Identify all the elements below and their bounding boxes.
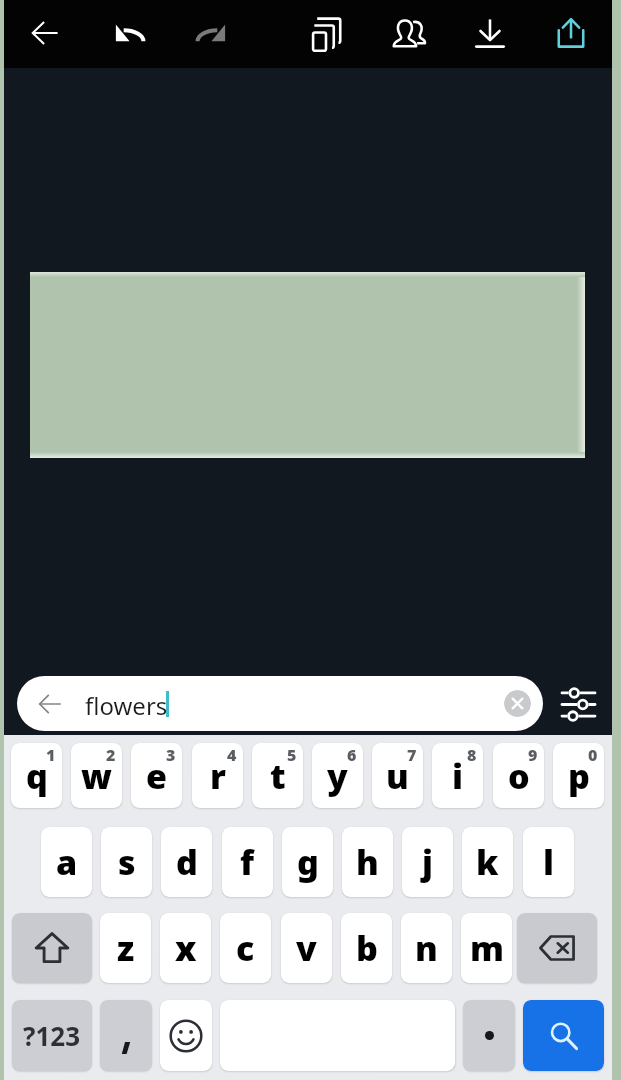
staticText: d [176,839,198,885]
button[interactable]: m [461,913,512,983]
staticText: u [386,753,409,799]
button[interactable]: q [11,743,62,808]
staticText: o [508,753,530,799]
button[interactable]: v [281,913,332,983]
staticText: k [476,839,499,885]
staticText: a [56,839,78,885]
button[interactable]: l [523,827,574,897]
button[interactable]: Search filters [552,678,604,730]
button[interactable]: Search [523,1000,604,1071]
button[interactable]: f [222,827,273,897]
button[interactable]: ?123 [12,1000,92,1071]
button[interactable]: Download [464,7,516,59]
staticText: 1 [46,744,56,766]
button[interactable]: g [282,827,333,897]
button[interactable]: Period [463,1000,515,1071]
button[interactable]: Backspace [517,913,597,983]
staticText: b [356,925,378,971]
button[interactable]: b [341,913,392,983]
staticText: g [297,839,319,885]
button[interactable]: a [41,827,92,897]
button[interactable]: Collaborators [383,7,435,59]
button[interactable]: flowers [17,676,543,731]
staticText: 4 [227,744,237,766]
staticText: m [470,925,504,971]
staticText: w [81,753,112,799]
staticText: 0 [588,744,598,766]
button[interactable]: o [493,743,544,808]
staticText: i [452,753,464,799]
button[interactable]: u [372,743,423,808]
button[interactable]: j [402,827,453,897]
staticText: n [415,925,438,971]
button[interactable]: Redo [185,6,237,58]
staticText: z [117,925,135,971]
staticText: flowers [85,689,168,722]
button[interactable]: s [101,827,152,897]
button[interactable]: d [161,827,212,897]
staticText: h [356,839,379,885]
button[interactable]: i [432,743,483,808]
staticText: 3 [166,744,176,766]
staticText: 9 [528,744,538,766]
button[interactable]: Comma [100,1000,152,1071]
staticText: 6 [347,744,357,766]
staticText: j [422,839,434,885]
staticText: 8 [467,744,477,766]
staticText: ?123 [23,1018,81,1053]
button[interactable]: e [131,743,182,808]
staticText: x [175,925,197,971]
staticText: 2 [106,744,116,766]
button[interactable]: c [220,913,271,983]
button[interactable]: Shift [12,913,92,983]
staticText: r [210,753,226,799]
button[interactable]: y [312,743,363,808]
button[interactable]: z [100,913,151,983]
button[interactable]: Emoji [160,1000,212,1071]
staticText: e [146,753,168,799]
staticText: q [26,753,48,799]
staticText: c [236,925,255,971]
button[interactable]: x [160,913,211,983]
button[interactable]: p [553,743,604,808]
button[interactable]: Back [19,7,71,59]
button[interactable]: Share [545,7,597,59]
button[interactable]: w [71,743,122,808]
staticText: p [568,753,590,799]
staticText: f [240,839,255,885]
staticText: y [327,753,348,799]
staticText: t [270,753,286,799]
button[interactable]: Undo [103,6,155,58]
button[interactable]: r [192,743,243,808]
button[interactable]: h [342,827,393,897]
staticText: l [543,839,554,885]
button[interactable]: k [462,827,513,897]
staticText: v [296,925,317,971]
staticText: 7 [407,744,417,766]
button[interactable]: n [401,913,452,983]
button[interactable]: t [252,743,303,808]
staticText: s [118,839,136,885]
staticText: 5 [287,744,297,766]
button[interactable]: Copies [302,7,354,59]
button[interactable]: Clear query [504,690,531,717]
